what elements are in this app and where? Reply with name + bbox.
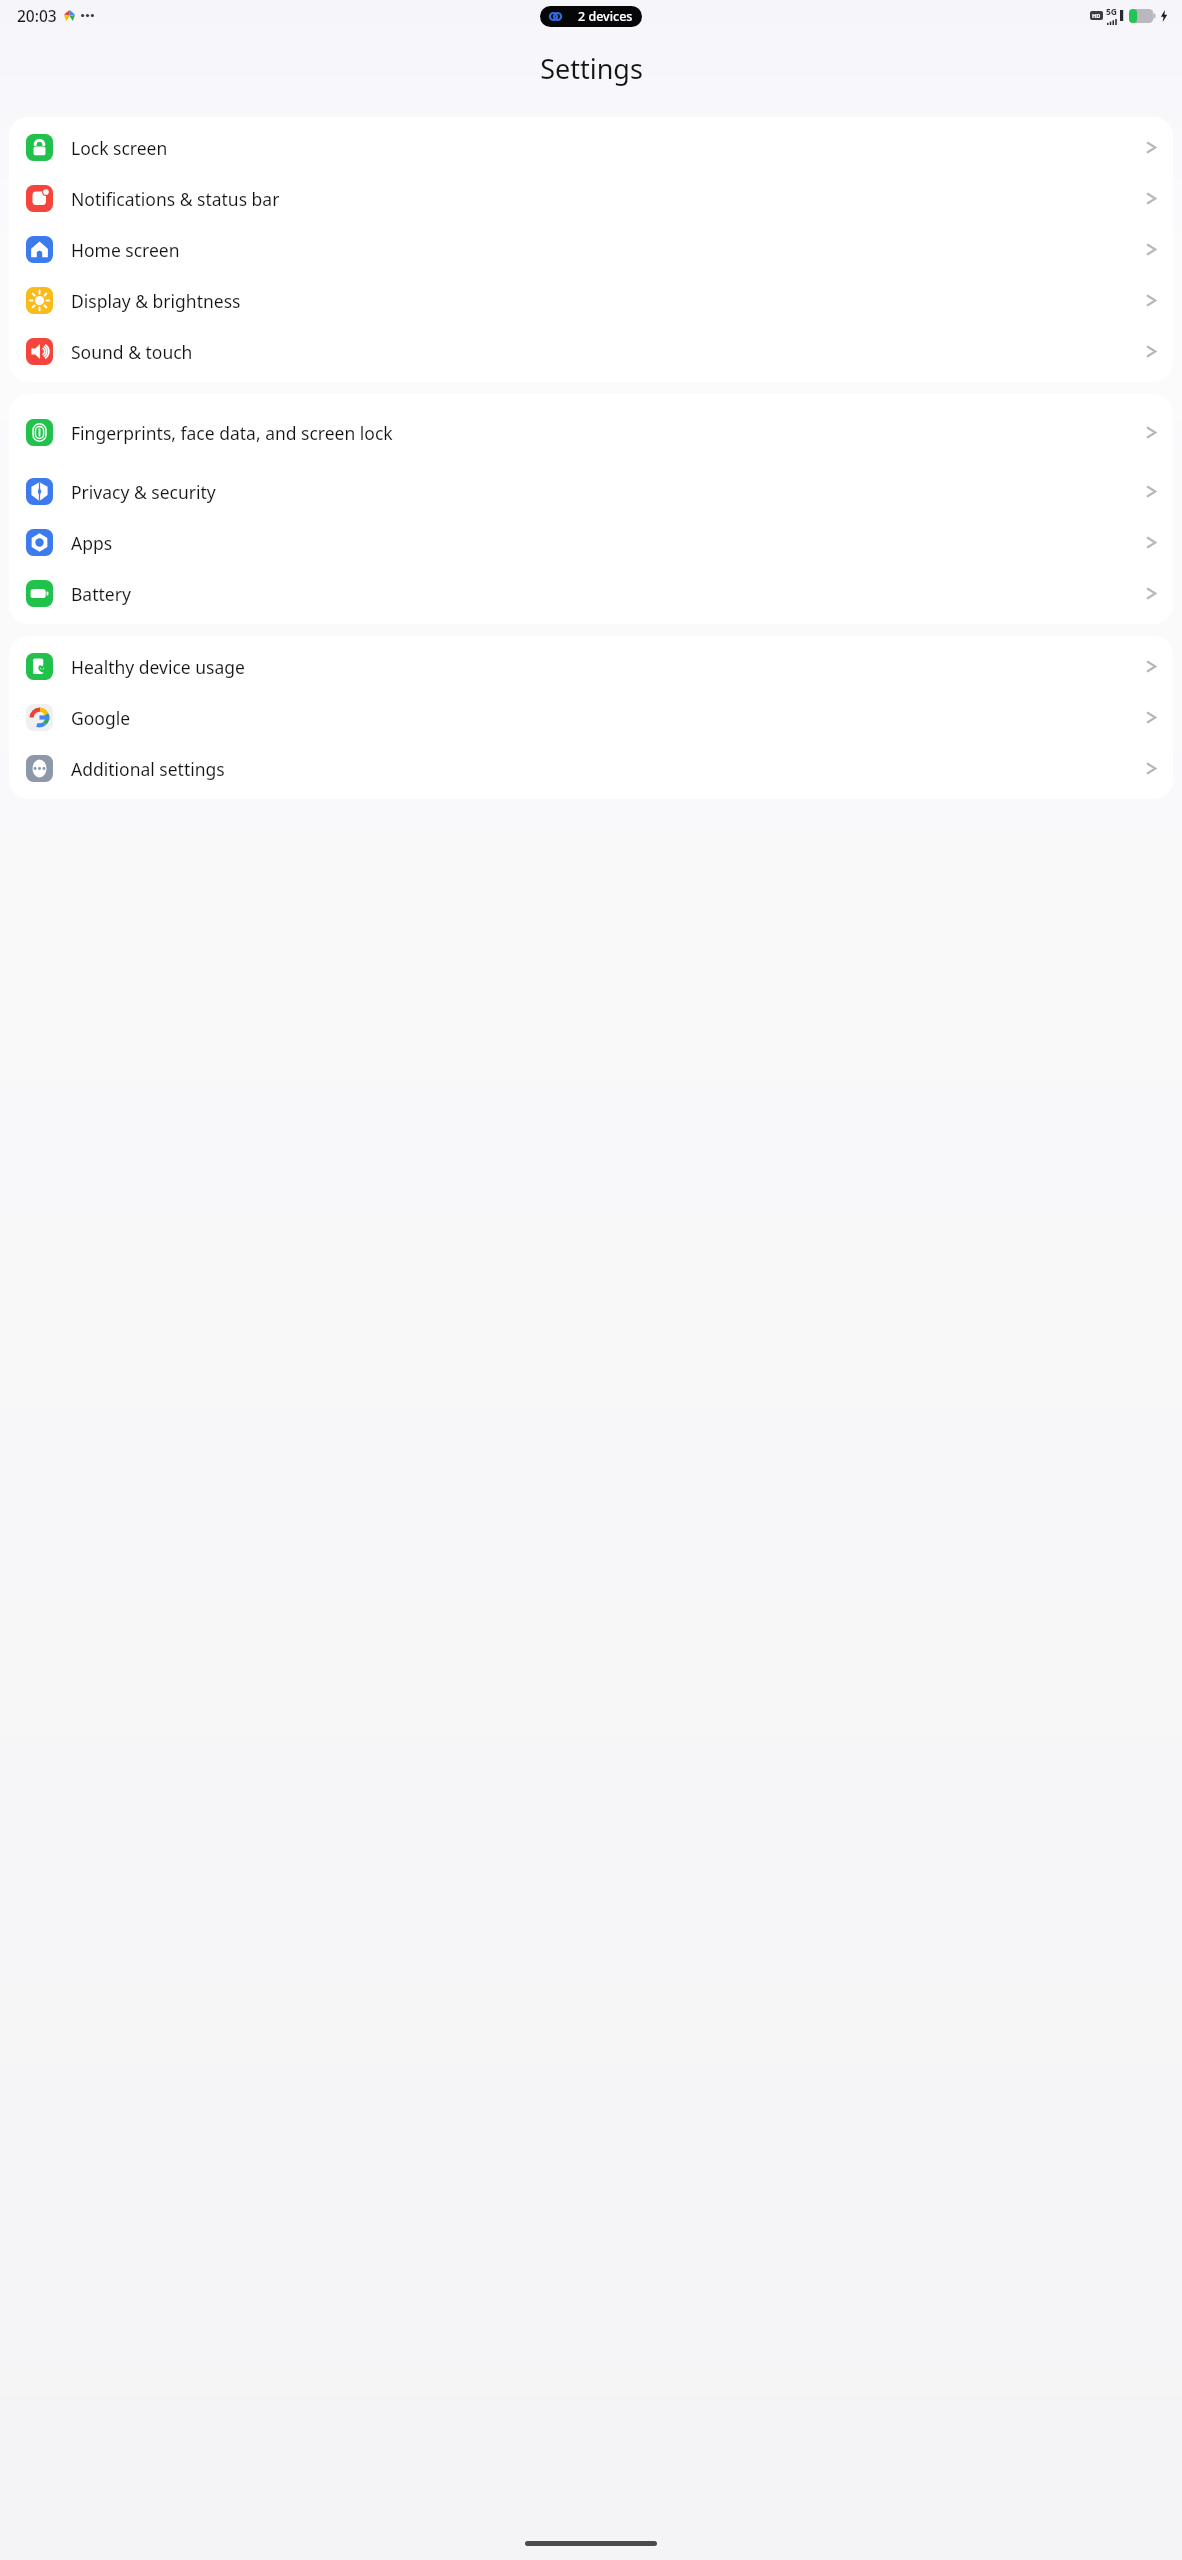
staticText: Sound & touch	[71, 340, 1136, 364]
button[interactable]: Google	[9, 692, 1173, 743]
staticText: Privacy & security	[71, 480, 1136, 504]
staticText: Home screen	[71, 238, 1136, 262]
staticText: 20:03	[17, 5, 57, 26]
staticText: Apps	[71, 531, 1136, 555]
staticText: Healthy device usage	[71, 655, 1136, 679]
button[interactable]: Privacy & security	[9, 466, 1173, 517]
staticText: HD	[1092, 12, 1101, 19]
staticText: 5G	[1106, 6, 1118, 18]
staticText: Google	[71, 706, 1136, 730]
staticText: Display & brightness	[71, 289, 1136, 313]
button[interactable]: Display & brightness	[9, 275, 1173, 326]
staticText: Settings	[540, 50, 643, 87]
button[interactable]: Apps	[9, 517, 1173, 568]
staticText: Fingerprints, face data, and screen lock	[71, 421, 1136, 445]
button[interactable]: Notifications & status bar	[9, 173, 1173, 224]
button[interactable]: Fingerprints, face data, and screen lock	[9, 399, 1173, 466]
button[interactable]: Additional settings	[9, 743, 1173, 794]
button[interactable]: Home screen	[9, 224, 1173, 275]
staticText: Notifications & status bar	[71, 187, 1136, 211]
staticText: 2 devices	[578, 8, 633, 25]
staticText: Lock screen	[71, 136, 1136, 160]
button[interactable]: Healthy device usage	[9, 641, 1173, 692]
button[interactable]: Battery	[9, 568, 1173, 619]
button[interactable]: Sound & touch	[9, 326, 1173, 377]
staticText: Battery	[71, 582, 1136, 606]
staticText: Additional settings	[71, 757, 1136, 781]
button[interactable]: Lock screen	[9, 122, 1173, 173]
